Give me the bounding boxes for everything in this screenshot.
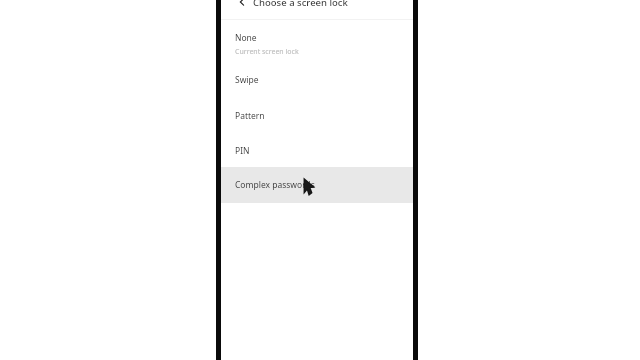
staticText: Complex passwords (235, 179, 315, 191)
button[interactable]: Complex passwords (221, 167, 413, 203)
button[interactable]: Back (234, 0, 250, 10)
staticText: Choose a screen lock (253, 0, 348, 9)
button[interactable]: None (221, 26, 413, 62)
staticText: PIN (235, 145, 250, 157)
staticText: Swipe (235, 74, 259, 86)
staticText: None (235, 32, 257, 44)
staticText: Current screen lock (235, 47, 299, 57)
button[interactable]: Swipe (221, 62, 413, 98)
button[interactable]: PIN (221, 134, 413, 167)
staticText: Pattern (235, 110, 265, 122)
button[interactable]: Pattern (221, 98, 413, 134)
